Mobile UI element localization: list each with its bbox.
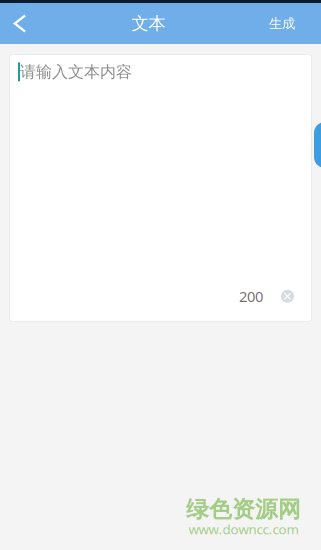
button[interactable]: 更多 [287, 122, 321, 168]
staticText: 文本 [131, 13, 165, 34]
staticText: www.downcc.com [188, 520, 298, 538]
staticText: 生成 [269, 15, 295, 32]
button[interactable]: 返回 [0, 3, 40, 44]
button[interactable]: 请输入文本内容 [9, 54, 312, 322]
button[interactable]: 清空 [263, 288, 294, 305]
staticText: 绿色资源网 [186, 495, 301, 523]
button[interactable]: 生成 [257, 3, 307, 44]
staticText: 请输入文本内容 [20, 62, 132, 82]
staticText: 200 [239, 286, 263, 306]
